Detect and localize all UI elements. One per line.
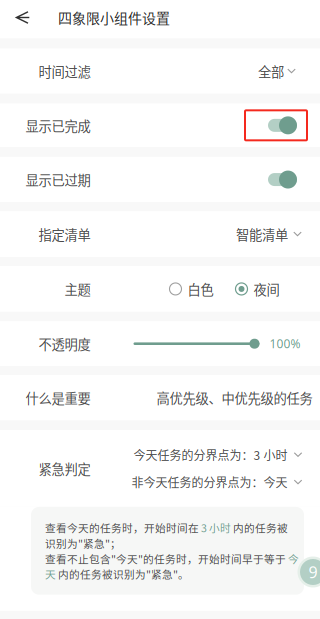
staticText: 时间过滤: [38, 61, 90, 81]
staticText: 100%: [269, 336, 300, 352]
staticText: 查看不止包含"今天"的任务时，开始时间早于等于: [45, 551, 288, 566]
staticText: 主题: [64, 279, 90, 299]
button[interactable]: 什么是重要: [0, 375, 320, 421]
staticText: 非今天任务的分界点为：: [131, 473, 263, 491]
staticText: 显示已完成: [25, 116, 90, 135]
button[interactable]: 白色: [169, 279, 213, 299]
staticText: 全部: [258, 61, 284, 81]
button[interactable]: 返回: [0, 0, 45, 37]
button[interactable]: 时间过滤: [0, 48, 320, 94]
staticText: 显示已过期: [25, 170, 90, 189]
staticText: 紧急判定: [38, 459, 90, 478]
staticText: 识别为"紧急"；: [45, 535, 121, 551]
staticText: 查看今天的任务时，开始时间在: [45, 520, 201, 535]
staticText: 3 小时: [253, 446, 287, 463]
staticText: 四象限小组件设置: [58, 7, 170, 28]
staticText: 内的任务被识别为"紧急"。: [56, 566, 189, 582]
staticText: 夜间: [253, 279, 279, 299]
staticText: 什么是重要: [25, 388, 90, 407]
button[interactable]: 非今天任务的分界点为：: [131, 473, 304, 491]
staticText: 今: [288, 551, 299, 566]
staticText: 今天: [263, 473, 287, 491]
button[interactable]: 指定清单: [0, 211, 320, 257]
button[interactable]: 今天任务的分界点为：: [133, 446, 304, 463]
button[interactable]: 任务计数 9: [297, 556, 320, 587]
staticText: 9: [308, 561, 317, 583]
staticText: 天: [45, 566, 56, 582]
staticText: 今天任务的分界点为：: [133, 446, 253, 463]
staticText: 3 小时: [201, 520, 231, 535]
button[interactable]: 显示已过期: [268, 170, 297, 188]
staticText: 高优先级、中优先级的任务: [156, 388, 312, 407]
button[interactable]: 显示已完成: [245, 110, 307, 140]
button[interactable]: 夜间: [235, 279, 279, 299]
staticText: 智能清单: [236, 224, 288, 244]
staticText: 内的任务被: [231, 520, 288, 535]
staticText: 白色: [187, 279, 213, 299]
staticText: 不透明度: [38, 334, 90, 353]
staticText: 指定清单: [38, 224, 90, 244]
